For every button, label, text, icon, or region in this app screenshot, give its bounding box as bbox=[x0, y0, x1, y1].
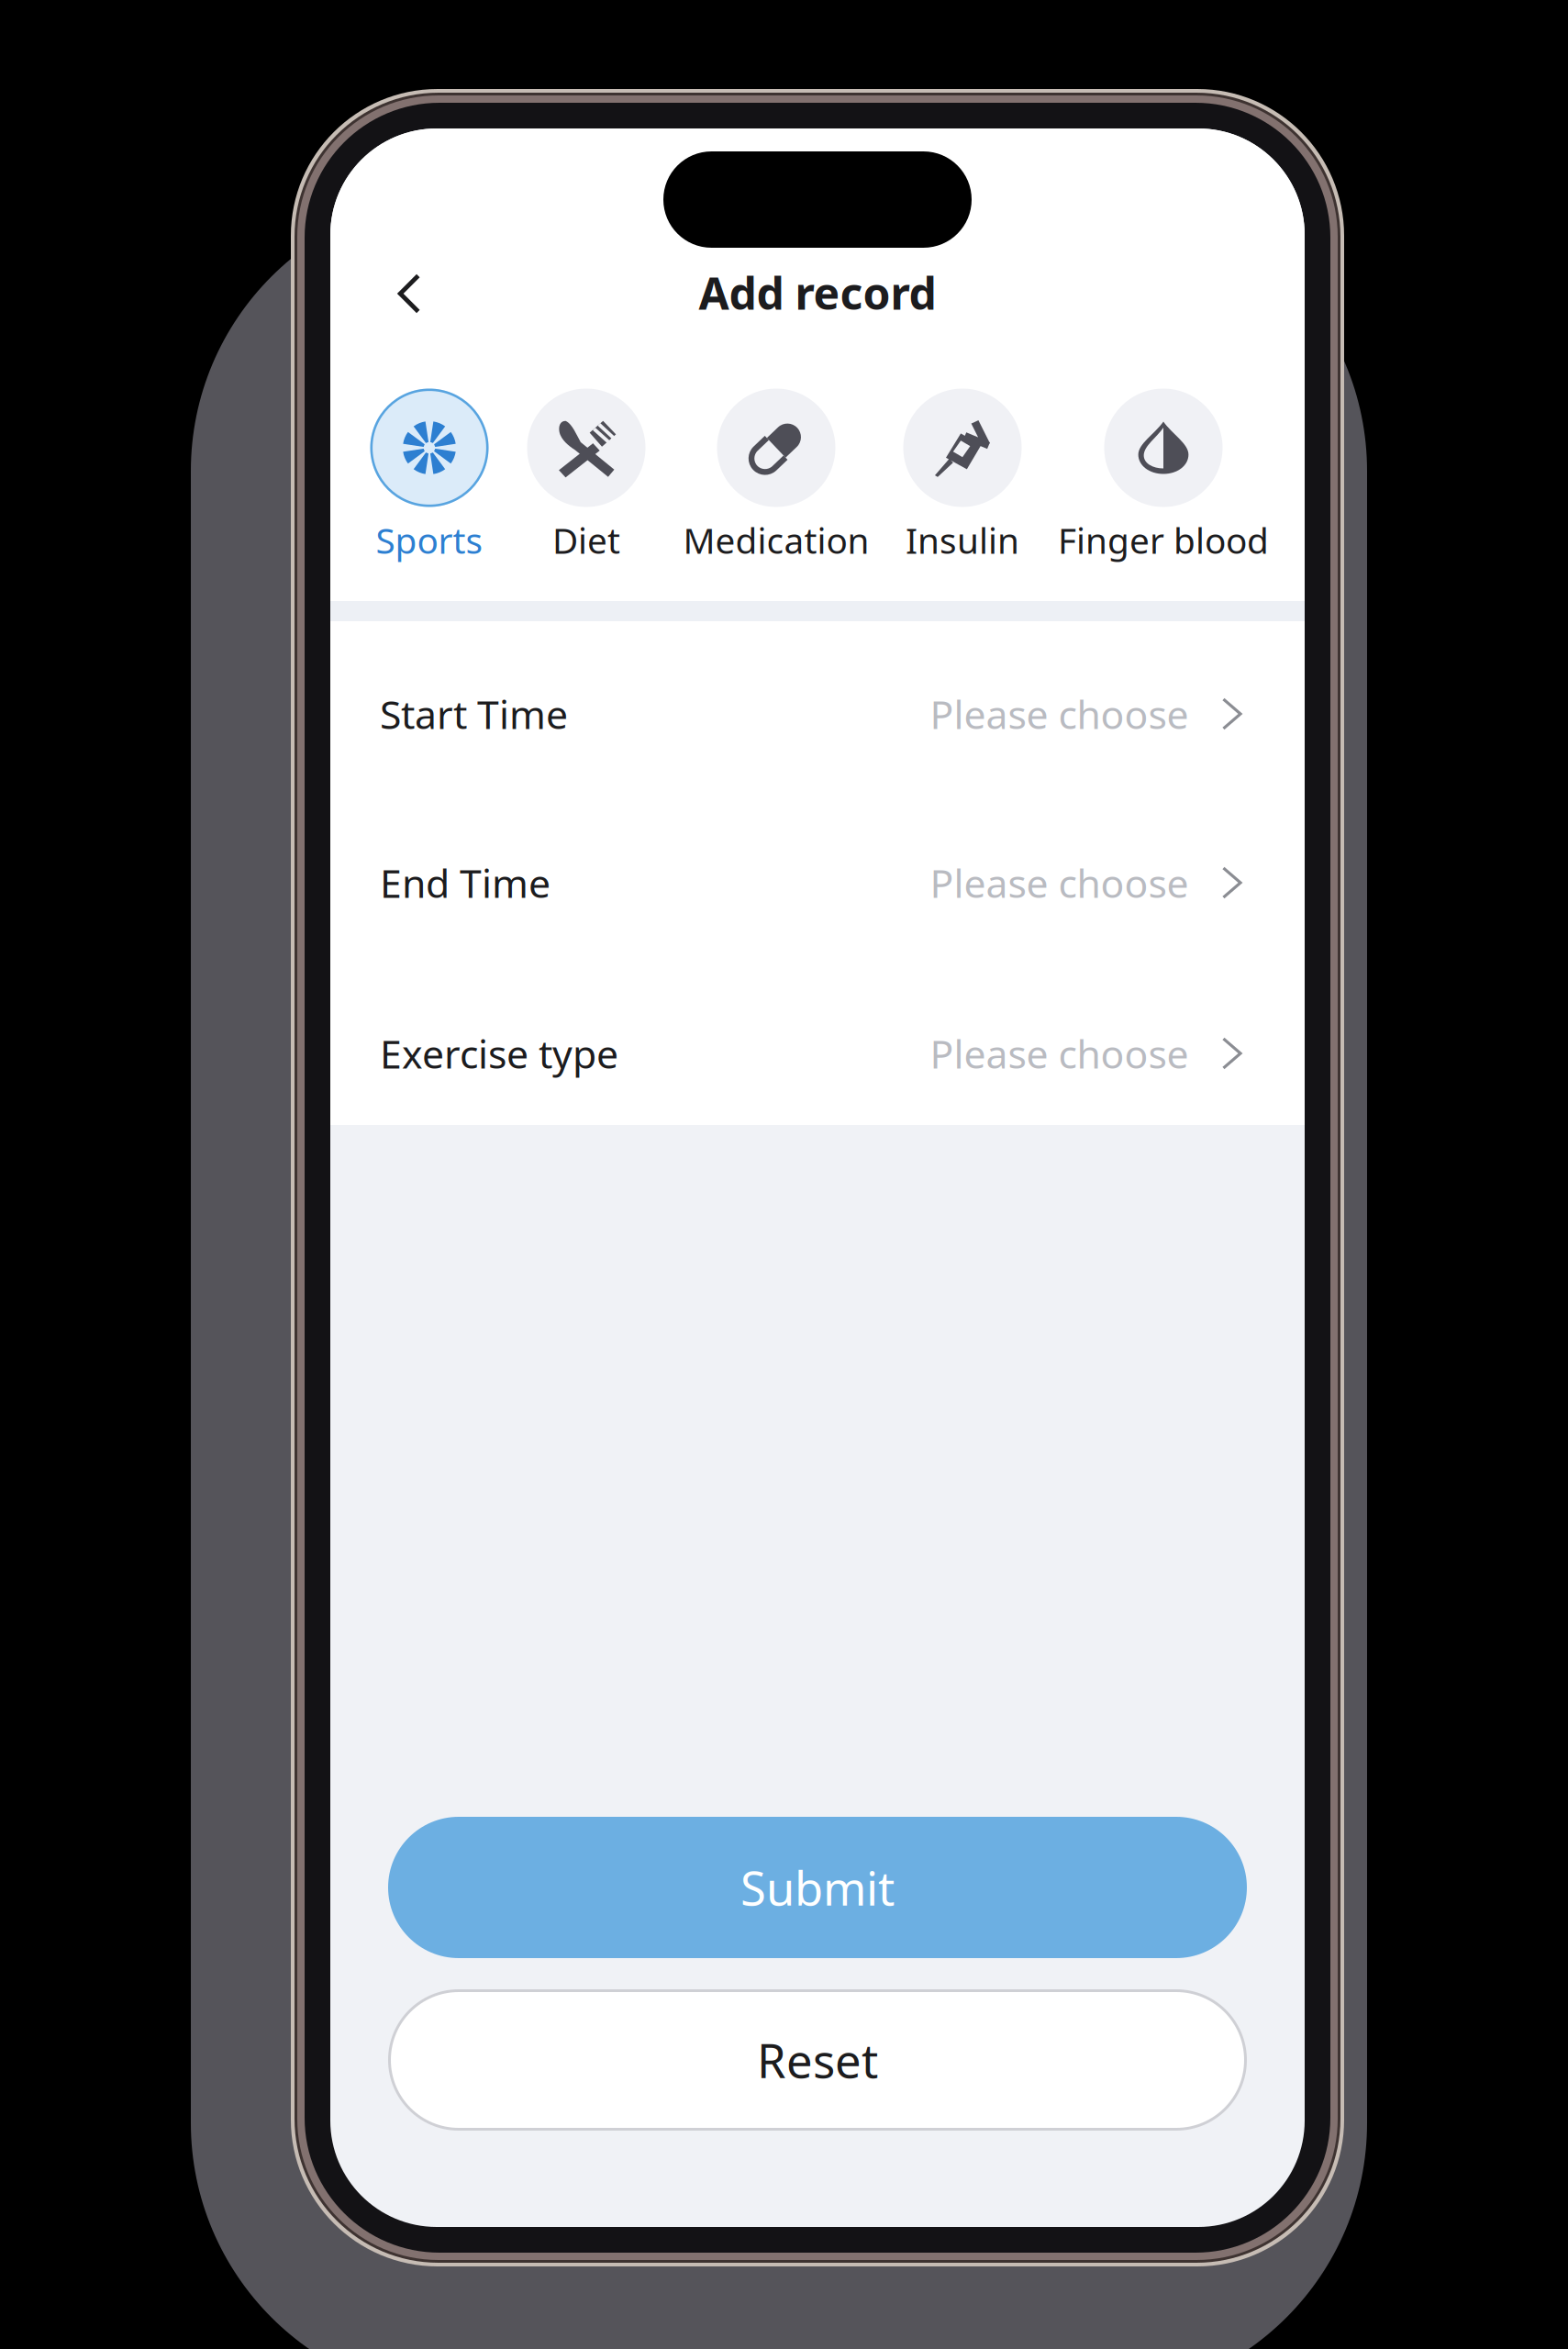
staticText: End Time bbox=[380, 857, 550, 909]
button[interactable]: Reset bbox=[388, 1989, 1247, 2131]
staticText: Finger blood bbox=[1058, 516, 1269, 563]
button[interactable]: End Time bbox=[330, 797, 1305, 968]
button[interactable]: Finger blood bbox=[1058, 389, 1269, 560]
staticText: Diet bbox=[552, 516, 620, 563]
button[interactable]: Submit bbox=[388, 1817, 1247, 1958]
staticText: Add record bbox=[699, 263, 936, 322]
button[interactable]: Sports bbox=[370, 389, 489, 560]
staticText: Submit bbox=[740, 1857, 895, 1918]
staticText: Sports bbox=[376, 516, 483, 563]
button[interactable]: Diet bbox=[527, 389, 645, 560]
button[interactable]: Medication bbox=[683, 389, 869, 560]
staticText: Reset bbox=[757, 2029, 878, 2091]
staticText: Medication bbox=[683, 516, 869, 563]
button[interactable]: Start Time bbox=[330, 629, 1305, 799]
staticText: Insulin bbox=[906, 516, 1019, 563]
staticText: Please choose bbox=[930, 688, 1189, 740]
button[interactable]: Back bbox=[365, 250, 453, 338]
staticText: Please choose bbox=[930, 857, 1189, 909]
staticText: Start Time bbox=[380, 688, 568, 740]
button[interactable]: Exercise type bbox=[330, 968, 1305, 1139]
button[interactable]: Insulin bbox=[903, 389, 1022, 560]
staticText: Please choose bbox=[930, 1027, 1189, 1079]
staticText: Exercise type bbox=[380, 1027, 618, 1079]
